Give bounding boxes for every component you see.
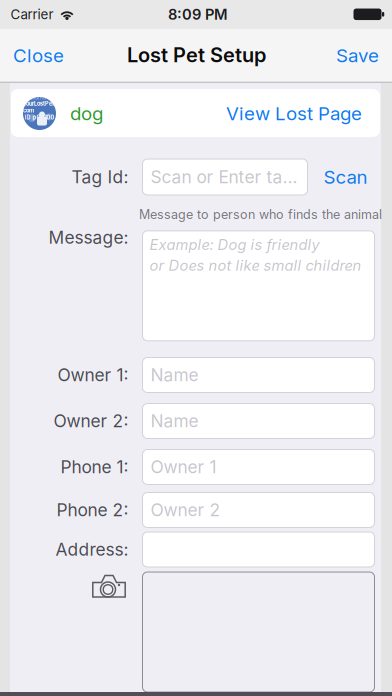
staticText: Click Here xyxy=(30,95,49,100)
staticText: Owner 1: xyxy=(57,364,128,385)
button[interactable]: Owner 1 xyxy=(142,449,374,484)
staticText: Lost Pet Setup xyxy=(127,43,266,67)
staticText: Tag Id: xyxy=(71,166,128,187)
button[interactable]: Add photo xyxy=(92,573,126,598)
staticText: Scan or Enter ta... xyxy=(150,166,297,187)
button[interactable]: Owner 2 xyxy=(142,492,374,527)
button[interactable]: Photo area xyxy=(142,572,374,692)
staticText: View Lost Page xyxy=(226,102,362,125)
staticText: Carrier xyxy=(10,6,53,22)
staticText: Owner 2: xyxy=(53,410,128,431)
staticText: or Does not like small children xyxy=(149,256,361,274)
staticText: Message: xyxy=(48,227,128,248)
staticText: Close xyxy=(13,44,64,67)
button[interactable] xyxy=(142,532,374,567)
staticText: Phone 2: xyxy=(56,499,128,520)
staticText: Message to person who finds the animal xyxy=(139,207,382,222)
button[interactable]: Scan or Enter ta... xyxy=(142,159,307,195)
button[interactable]: Save xyxy=(303,29,392,82)
staticText: Example: Dog is friendly xyxy=(149,236,319,253)
staticText: Address: xyxy=(55,539,128,560)
button[interactable]: Example: Dog is friendly xyxy=(142,231,374,341)
button[interactable]: Close xyxy=(0,29,89,82)
staticText: Save xyxy=(336,44,379,67)
staticText: dog xyxy=(70,102,103,125)
staticText: Name xyxy=(150,410,198,431)
button[interactable]: Name xyxy=(142,403,374,438)
staticText: Owner 2 xyxy=(150,499,220,520)
staticText: Scan xyxy=(323,166,367,188)
staticText: Name xyxy=(150,364,198,385)
button[interactable]: View Lost Page xyxy=(202,91,370,135)
staticText: YourLostPet.com xyxy=(23,100,56,114)
button[interactable]: Name xyxy=(142,357,374,392)
staticText: 8:09 PM xyxy=(168,6,228,23)
staticText: Owner 1 xyxy=(150,456,216,477)
staticText: Phone 1: xyxy=(60,456,128,477)
button[interactable]: Scan xyxy=(315,159,375,195)
staticText: ID p00100 xyxy=(24,114,54,121)
